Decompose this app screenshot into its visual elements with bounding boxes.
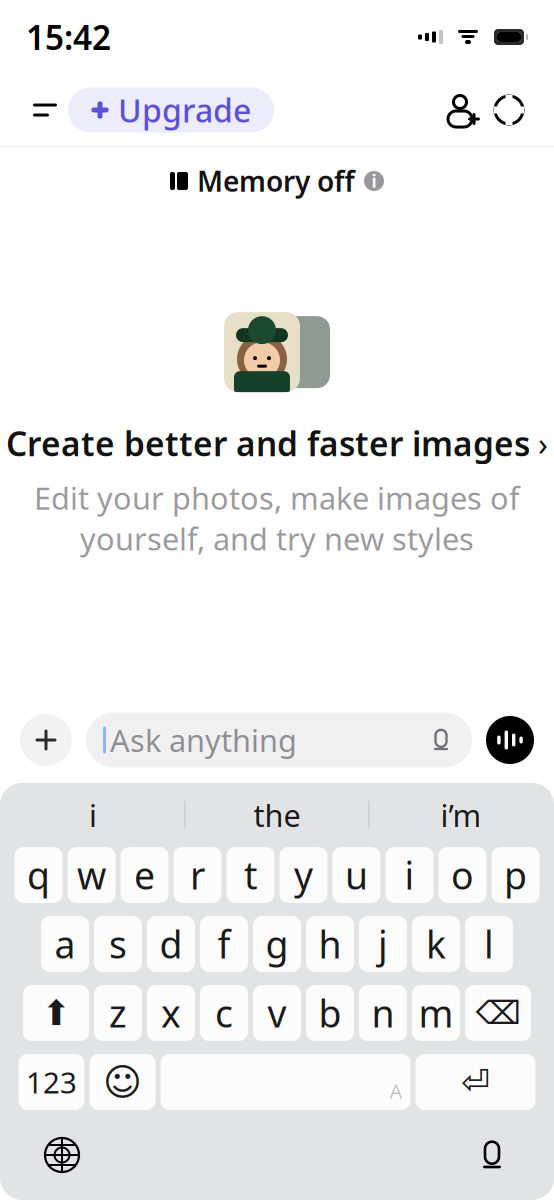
staticText: i [371,169,376,192]
staticText: o [451,850,474,900]
staticText: y [294,850,313,900]
button[interactable]: p [491,847,539,903]
button[interactable]: t [226,847,274,903]
button[interactable]: e [120,847,168,903]
button[interactable]: Shift [23,985,89,1041]
staticText: the [253,795,300,835]
staticText: k [426,919,446,969]
staticText: e [134,850,155,900]
staticText: a [54,919,75,969]
button[interactable]: b [306,985,354,1041]
staticText: ⏎ [461,1062,490,1102]
button[interactable]: Return [415,1054,535,1110]
staticText: m [418,988,453,1038]
button[interactable]: i [385,847,433,903]
staticText: v [267,988,286,1038]
staticText: f [217,919,230,969]
staticText: ⬆ [41,993,70,1033]
staticText: t [244,850,257,900]
button[interactable]: n [359,985,407,1041]
button[interactable]: z [94,985,142,1041]
button[interactable]: l [465,916,513,972]
staticText: A [389,1077,402,1104]
button[interactable]: w [67,847,115,903]
button[interactable]: i [1,787,184,843]
staticText: n [371,988,394,1038]
staticText: q [27,850,50,900]
staticText: s [109,919,127,969]
staticText: w [77,850,106,900]
button[interactable]: Delete [465,985,531,1041]
staticText: i [89,795,97,835]
button[interactable]: Create better and faster images [6,309,548,559]
button[interactable]: f [200,916,248,972]
button[interactable]: y [279,847,327,903]
button[interactable]: g [253,916,301,972]
staticText: h [318,919,341,969]
button[interactable]: Upgrade [68,87,274,132]
button[interactable]: u [332,847,380,903]
staticText: Ask anything [110,720,297,760]
button[interactable]: q [14,847,62,903]
staticText: i [404,850,414,900]
staticText: z [109,988,127,1038]
button[interactable]: i’m [369,787,552,843]
staticText: yourself, and try new styles [80,518,474,559]
staticText: Memory off [197,162,355,200]
staticText: i’m [440,795,481,835]
staticText: r [190,850,205,900]
button[interactable]: d [147,916,195,972]
staticText: Create better and faster images [6,421,530,465]
button[interactable]: Add attachment [20,714,72,766]
button[interactable]: j [359,916,407,972]
staticText: ⌫ [475,995,520,1031]
staticText: p [504,850,527,900]
button[interactable]: Emoji [89,1054,155,1110]
button[interactable]: Next keyboard [34,1127,90,1183]
button[interactable]: space [160,1054,410,1110]
staticText: d [159,919,182,969]
button[interactable]: a [41,916,89,972]
button[interactable]: c [200,985,248,1041]
staticText: j [378,919,388,969]
button[interactable]: v [253,985,301,1041]
button[interactable]: Temporary chat [486,87,532,133]
button[interactable]: Voice mode [486,716,534,764]
button[interactable]: x [147,985,195,1041]
staticText: ☺ [103,1061,142,1103]
button[interactable]: r [173,847,221,903]
staticText: l [484,919,494,969]
staticText: b [318,988,341,1038]
button[interactable]: h [306,916,354,972]
button[interactable]: 123 [18,1054,84,1110]
staticText: 123 [26,1062,77,1101]
staticText: Edit your photos, make images of [34,477,520,518]
button[interactable]: Memory off [160,161,394,201]
button[interactable]: s [94,916,142,972]
staticText: g [265,919,288,969]
button[interactable]: k [412,916,460,972]
button[interactable]: the [185,787,368,843]
button[interactable]: Ask anything [86,712,472,767]
button[interactable]: Menu [22,87,68,133]
staticText: u [345,850,368,900]
staticText: 15:42 [26,15,111,59]
staticText: Upgrade [118,89,251,131]
button[interactable]: o [438,847,486,903]
staticText: c [215,988,233,1038]
button[interactable]: Dictation [464,1127,520,1183]
button[interactable]: m [412,985,460,1041]
staticText: x [161,988,181,1038]
button[interactable]: Invite [440,87,486,133]
staticText: › [538,422,548,464]
